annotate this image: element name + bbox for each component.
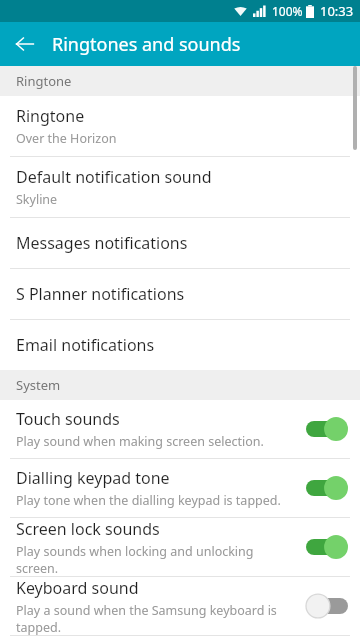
staticText: Messages notifications: [16, 232, 188, 254]
button[interactable]: Screen lock sounds: [0, 518, 360, 576]
button[interactable]: Email notifications: [0, 320, 360, 370]
staticText: Play sound when making screen selection.: [16, 433, 264, 450]
staticText: Default notification sound: [16, 166, 212, 188]
button[interactable]: Dialling keypad tone: [0, 459, 360, 517]
staticText: S Planner notifications: [16, 283, 185, 305]
staticText: Touch sounds: [16, 408, 120, 430]
staticText: Email notifications: [16, 334, 155, 356]
staticText: Keyboard sound: [16, 577, 139, 599]
staticText: Ringtone: [16, 105, 85, 127]
button[interactable]: Keyboard sound: [0, 577, 360, 635]
button[interactable]: S Planner notifications: [0, 269, 360, 319]
button[interactable]: Default notification sound: [0, 157, 360, 217]
staticText: Ringtones and sounds: [52, 32, 241, 57]
staticText: Play tone when the dialling keypad is ta…: [16, 492, 281, 509]
staticText: System: [16, 376, 61, 394]
button[interactable]: On: [306, 475, 348, 501]
button[interactable]: Messages notifications: [0, 218, 360, 268]
staticText: Ringtone: [16, 72, 72, 90]
staticText: Play a sound when the Samsung keyboard i…: [16, 602, 298, 635]
staticText: Screen lock sounds: [16, 518, 160, 540]
staticText: Skyline: [16, 191, 58, 208]
button[interactable]: On: [306, 416, 348, 442]
button[interactable]: Off: [306, 593, 348, 619]
staticText: Play sounds when locking and unlocking s…: [16, 543, 298, 576]
staticText: Over the Horizon: [16, 130, 117, 147]
button[interactable]: Ringtone: [0, 96, 360, 156]
button[interactable]: Touch sounds: [0, 400, 360, 458]
staticText: 10:33: [320, 2, 354, 20]
button[interactable]: On: [306, 534, 348, 560]
button[interactable]: Back: [8, 27, 42, 61]
staticText: 100%: [272, 3, 303, 19]
staticText: Dialling keypad tone: [16, 467, 170, 489]
